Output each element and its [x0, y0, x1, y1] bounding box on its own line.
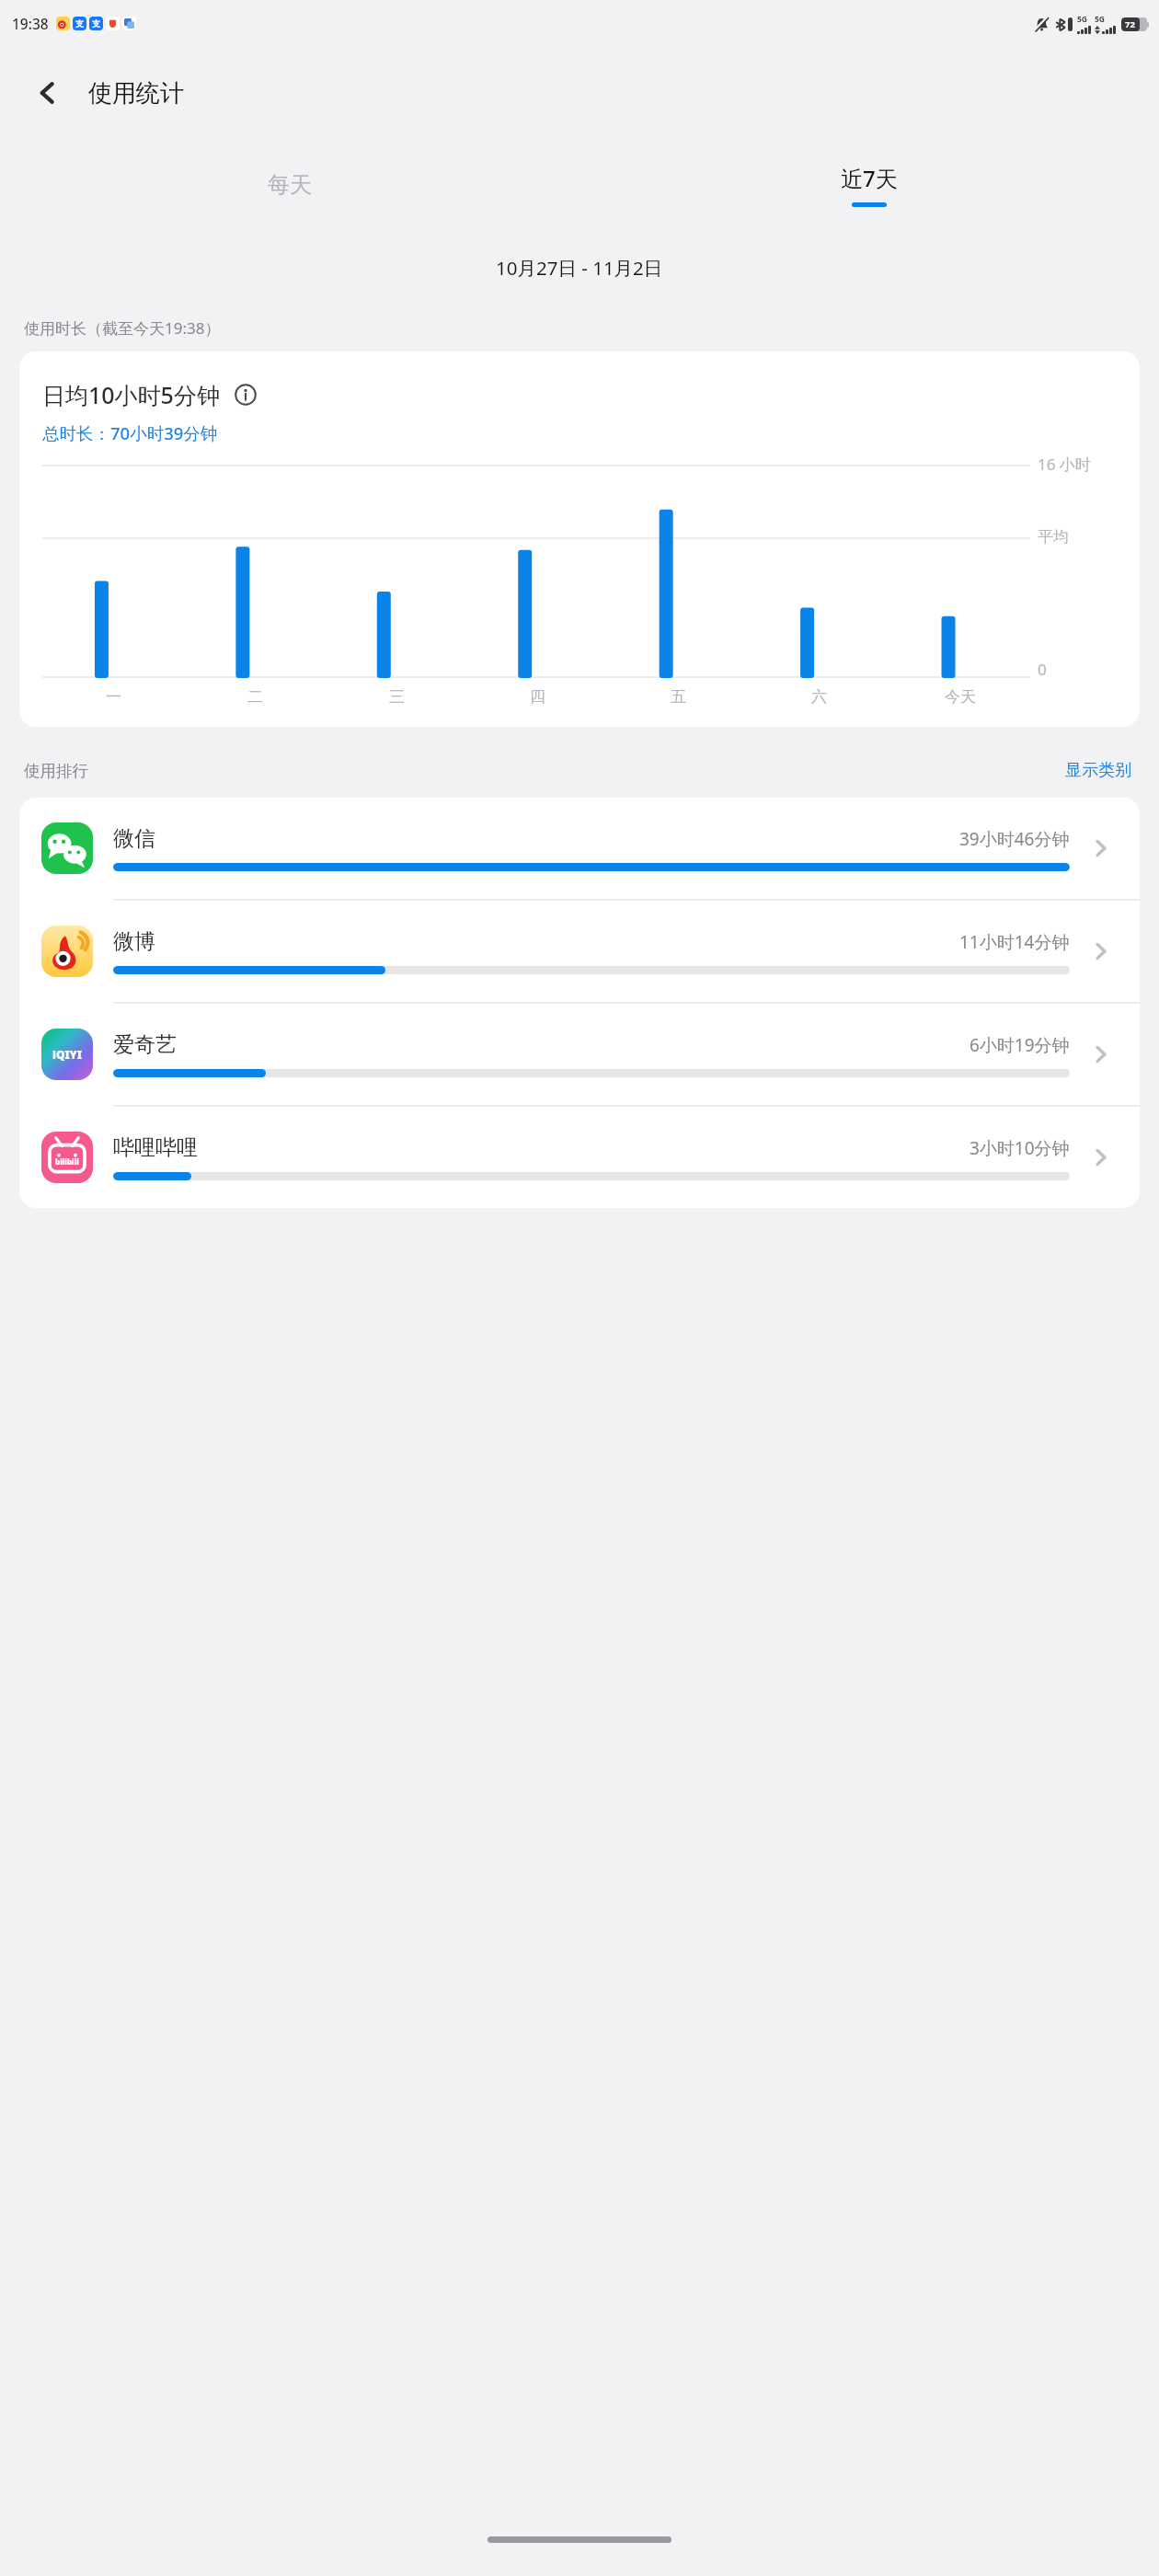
staticText: 微博: [113, 928, 155, 955]
button[interactable]: Back: [24, 69, 72, 117]
other: Details: [1083, 1036, 1119, 1073]
staticText: 哔哩哔哩: [113, 1134, 198, 1161]
staticText: 使用排行: [24, 761, 88, 781]
staticText: iQIYI: [52, 1047, 82, 1062]
button[interactable]: 每天: [0, 139, 579, 231]
staticText: 六: [811, 687, 827, 707]
staticText: 显示类别: [1065, 760, 1131, 781]
staticText: 5G: [1095, 14, 1106, 25]
staticText: 微信: [113, 825, 155, 852]
staticText: 39小时46分钟: [959, 827, 1070, 851]
staticText: 0: [1038, 659, 1047, 680]
staticText: 支: [75, 18, 84, 29]
other: Details: [1083, 1139, 1119, 1176]
staticText: 支: [92, 18, 100, 29]
staticText: 今天: [945, 687, 976, 707]
button[interactable]: 显示类别: [1061, 756, 1135, 785]
staticText: 10月27日 - 11月2日: [496, 255, 663, 281]
staticText: 16 小时: [1038, 454, 1091, 475]
staticText: 5G: [1077, 14, 1088, 25]
staticText: 四: [530, 687, 545, 707]
button[interactable]: 日均10小时5分钟: [19, 351, 1140, 727]
staticText: 使用统计: [88, 78, 184, 109]
staticText: 每天: [268, 171, 312, 199]
staticText: bilibili: [55, 1156, 79, 1167]
button[interactable]: iQIYI: [19, 1004, 1140, 1105]
staticText: 11小时14分钟: [959, 930, 1070, 954]
staticText: 近7天: [841, 163, 898, 193]
button[interactable]: 微博: [19, 901, 1140, 1002]
staticText: 3小时10分钟: [970, 1136, 1070, 1160]
button[interactable]: bilibili: [19, 1107, 1140, 1208]
staticText: 二: [247, 687, 263, 707]
staticText: 19:38: [12, 14, 49, 33]
button[interactable]: 微信: [19, 798, 1140, 899]
staticText: 一: [106, 687, 121, 707]
staticText: 6小时19分钟: [970, 1033, 1070, 1057]
other: Details: [1083, 933, 1119, 970]
staticText: 使用时长（截至今天19:38）: [24, 317, 221, 339]
staticText: 72: [1125, 18, 1135, 30]
staticText: 三: [389, 687, 405, 707]
other: Details: [1083, 830, 1119, 867]
button[interactable]: 近7天: [579, 139, 1159, 231]
staticText: 平均: [1038, 527, 1069, 546]
staticText: 五: [671, 687, 686, 707]
staticText: 总时长：70小时39分钟: [42, 421, 218, 444]
button[interactable]: Info: [233, 382, 258, 408]
staticText: 爱奇艺: [113, 1031, 177, 1058]
staticText: 日均10小时5分钟: [42, 379, 220, 410]
